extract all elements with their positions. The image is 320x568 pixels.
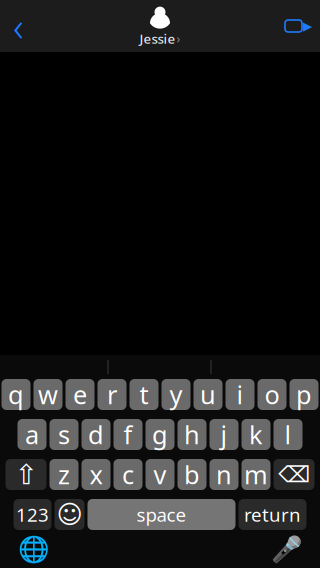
staticText: q xyxy=(8,378,24,411)
staticText: u xyxy=(200,378,216,411)
button[interactable]: g xyxy=(145,419,174,450)
button[interactable]: Back xyxy=(0,4,37,48)
button[interactable]: q xyxy=(1,379,30,410)
button[interactable]: Shift xyxy=(5,459,46,490)
staticText: ‹ xyxy=(13,0,24,52)
button[interactable]: u xyxy=(193,379,222,410)
staticText: › xyxy=(176,30,180,46)
staticText: e xyxy=(73,378,87,411)
staticText: t xyxy=(139,378,148,411)
button[interactable]: h xyxy=(177,419,206,450)
staticText: n xyxy=(216,458,232,491)
staticText: 123 xyxy=(16,502,49,527)
staticText: r xyxy=(107,378,117,411)
button[interactable]: m xyxy=(241,459,270,490)
staticText: o xyxy=(264,378,279,411)
button[interactable]: n xyxy=(209,459,238,490)
staticText: space xyxy=(136,502,186,527)
button[interactable]: Jessie xyxy=(115,2,205,50)
staticText: ⌫ xyxy=(278,462,310,487)
button[interactable]: e xyxy=(65,379,94,410)
button[interactable]: k xyxy=(241,419,270,450)
button[interactable]: z xyxy=(49,459,78,490)
button[interactable]: f xyxy=(113,419,142,450)
button[interactable]: d xyxy=(81,419,110,450)
staticText: f xyxy=(123,418,132,451)
button[interactable]: v xyxy=(145,459,174,490)
button[interactable]: w xyxy=(33,379,62,410)
staticText: 🌐 xyxy=(17,534,49,563)
staticText: 🎤 xyxy=(270,534,302,563)
button[interactable]: a xyxy=(17,419,46,450)
staticText: ⇧ xyxy=(14,459,37,490)
staticText: h xyxy=(184,418,200,451)
button[interactable]: r xyxy=(97,379,126,410)
button[interactable]: l xyxy=(273,419,302,450)
staticText: Jessie xyxy=(139,30,175,47)
button[interactable]: return xyxy=(238,499,306,530)
staticText: c xyxy=(122,458,134,491)
staticText: x xyxy=(89,458,102,491)
staticText: m xyxy=(244,458,268,491)
button[interactable]: j xyxy=(209,419,238,450)
button[interactable]: p xyxy=(289,379,318,410)
staticText: s xyxy=(58,418,70,451)
staticText: a xyxy=(25,418,39,451)
staticText: p xyxy=(296,378,312,411)
staticText: l xyxy=(284,418,291,451)
staticText: ▶ xyxy=(303,19,312,33)
button[interactable]: b xyxy=(177,459,206,490)
staticText: y xyxy=(169,378,182,411)
button[interactable]: space xyxy=(87,499,235,530)
staticText: v xyxy=(153,458,166,491)
staticText: k xyxy=(249,418,263,451)
staticText: ☺ xyxy=(56,500,82,529)
button[interactable]: c xyxy=(113,459,142,490)
button[interactable]: 123 xyxy=(13,499,51,530)
staticText: j xyxy=(220,418,227,451)
button[interactable]: Dictation xyxy=(266,532,306,566)
button[interactable]: y xyxy=(161,379,190,410)
button[interactable]: s xyxy=(49,419,78,450)
button[interactable]: t xyxy=(129,379,158,410)
staticText: i xyxy=(236,378,243,411)
staticText: w xyxy=(38,378,58,411)
staticText: b xyxy=(184,458,200,491)
button[interactable]: FaceTime xyxy=(276,4,320,48)
staticText: d xyxy=(88,418,104,451)
staticText: z xyxy=(58,458,70,491)
button[interactable]: o xyxy=(257,379,286,410)
button[interactable]: Delete xyxy=(273,459,314,490)
button[interactable]: Next keyboard xyxy=(13,532,53,566)
staticText: return xyxy=(244,502,301,527)
staticText: g xyxy=(152,418,168,451)
button[interactable]: x xyxy=(81,459,110,490)
button[interactable]: Emoji xyxy=(54,499,84,530)
button[interactable]: i xyxy=(225,379,254,410)
